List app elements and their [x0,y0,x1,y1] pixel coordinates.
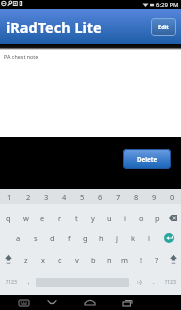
button[interactable]: c [51,249,68,270]
staticText: a [16,233,21,243]
button[interactable]: 9 [145,189,163,204]
button[interactable]: p [149,207,165,228]
staticText: 6 [98,192,103,202]
button[interactable]: Shift [165,249,181,270]
staticText: v [75,255,79,265]
staticText: ? [155,255,159,265]
button[interactable]: q [0,207,17,228]
staticText: 0 [170,192,175,202]
button[interactable]: . [149,273,159,291]
staticText: j [116,233,118,243]
staticText: 1 [7,192,12,202]
button[interactable]: 3 [37,189,55,204]
button[interactable]: ! [133,249,149,270]
button[interactable]: r [51,207,68,228]
staticText: m [121,255,129,265]
button[interactable]: o [133,207,149,228]
staticText: 6:29 PM [156,1,179,9]
button[interactable]: j [109,227,125,248]
staticText: w [23,213,29,223]
button[interactable]: 2 [19,189,37,204]
button[interactable]: g [77,227,93,248]
button[interactable]: Back [41,295,63,310]
button[interactable]: u [101,207,117,228]
button[interactable]: h [93,227,109,248]
staticText: u [107,213,112,223]
button[interactable]: ?123 [0,273,22,291]
button[interactable]: 1 [0,189,19,204]
staticText: f [68,233,71,243]
staticText: 5 [80,192,85,202]
staticText: s [34,233,38,243]
button[interactable]: f [61,227,77,248]
staticText: i [124,213,126,223]
button[interactable]: Recents [116,295,138,310]
staticText: ! [140,255,143,265]
staticText: g [83,233,88,243]
staticText: y [91,213,95,223]
button[interactable]: m [117,249,133,270]
button[interactable]: Backspace [165,207,181,228]
staticText: o [139,213,144,223]
button[interactable]: 7 [109,189,127,204]
staticText: 9 [152,192,157,202]
button[interactable]: Enter [157,227,181,248]
button[interactable]: z [17,249,34,270]
staticText: 8 [134,192,139,202]
staticText: d [50,233,55,243]
staticText: PA chest note [4,53,39,60]
button[interactable]: y [85,207,101,228]
staticText: k [131,233,136,243]
button[interactable]: n [101,249,117,270]
button[interactable]: 0 [163,189,181,204]
button[interactable]: 5 [73,189,91,204]
staticText: h [99,233,104,243]
button[interactable]: l [141,227,157,248]
button[interactable]: x [34,249,51,270]
staticText: p [155,213,160,223]
button[interactable]: s [27,227,44,248]
button[interactable]: e [34,207,51,228]
button[interactable]: Delete [123,149,171,169]
staticText: 2 [26,192,31,202]
button[interactable]: 8 [127,189,145,204]
button[interactable]: v [68,249,85,270]
button[interactable]: Shift [0,249,17,270]
staticText: ?123 [6,279,17,286]
button[interactable]: b [85,249,101,270]
staticText: iRadTech Lite [6,17,102,37]
staticText: Delete [137,155,158,163]
staticText: 3 [44,192,49,202]
staticText: 7 [116,192,121,202]
button[interactable]: , [22,273,36,291]
button[interactable]: w [17,207,34,228]
button[interactable]: Home [78,295,101,310]
button[interactable]: t [68,207,85,228]
button[interactable]: a [10,227,27,248]
staticText: e [40,213,45,223]
button[interactable]: ?123 [159,273,181,291]
staticText: b [91,255,96,265]
button[interactable]: d [44,227,61,248]
staticText: Edit [158,23,169,31]
staticText: . [153,278,155,286]
button[interactable]: 6 [91,189,109,204]
staticText: 4 [62,192,67,202]
staticText: ?123 [165,279,176,286]
staticText: t [75,213,78,223]
staticText: :-) [137,279,142,286]
staticText: q [6,213,11,223]
staticText: z [24,255,28,265]
staticText: l [148,233,150,243]
staticText: n [107,255,112,265]
staticText: , [28,278,30,286]
staticText: c [58,255,62,265]
button[interactable]: ? [149,249,165,270]
button[interactable]: :-) [129,273,149,291]
button[interactable]: i [117,207,133,228]
button[interactable]: 4 [55,189,73,204]
button[interactable]: Hide keyboard [13,295,34,310]
button[interactable]: Edit [151,18,176,36]
button[interactable]: k [125,227,141,248]
